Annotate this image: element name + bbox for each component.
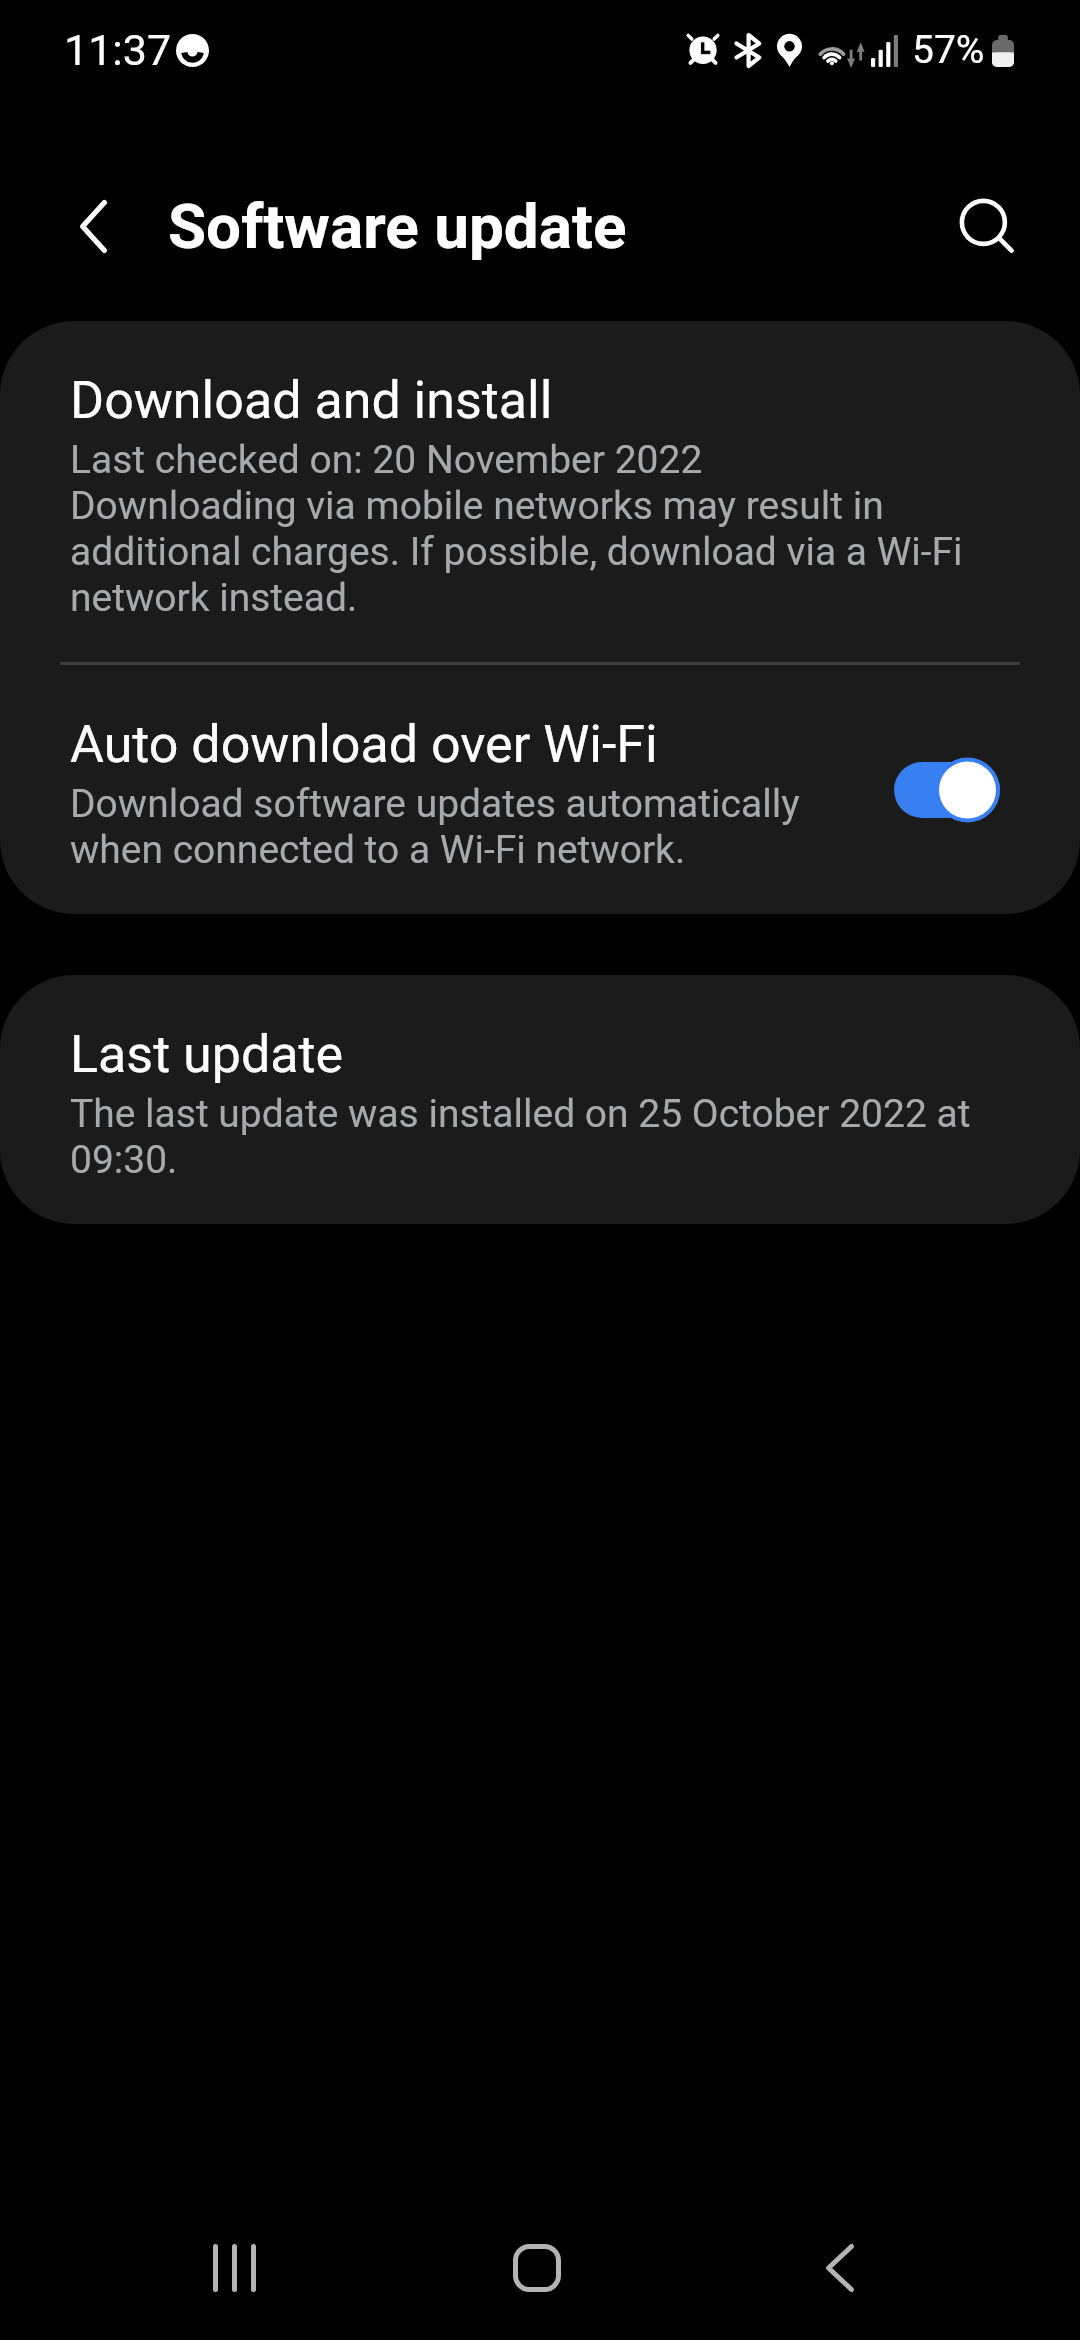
button[interactable]: Auto download over Wi-Fi (894, 757, 1002, 823)
staticText: The last update was installed on 25 Octo… (70, 1090, 1012, 1182)
staticText: Download software updates automatically … (70, 780, 838, 872)
staticText: Download and install (70, 370, 553, 431)
button[interactable]: Search (942, 180, 1034, 272)
staticText: Software update (168, 190, 627, 263)
button[interactable]: Last update (0, 975, 1080, 1224)
button[interactable]: Auto download over Wi-Fi (0, 665, 1080, 914)
staticText: 11:37 (64, 25, 172, 75)
staticText: Last checked on: 20 November 2022 Downlo… (70, 436, 1012, 620)
staticText: 57% (912, 27, 985, 73)
button[interactable]: Back (779, 2209, 901, 2327)
button[interactable]: Navigate up (47, 180, 139, 272)
button[interactable]: Download and install (0, 321, 1080, 662)
button[interactable]: Home (476, 2209, 598, 2327)
staticText: Auto download over Wi-Fi (70, 714, 658, 775)
button[interactable]: Recent apps (173, 2209, 295, 2327)
staticText: Last update (70, 1024, 344, 1085)
